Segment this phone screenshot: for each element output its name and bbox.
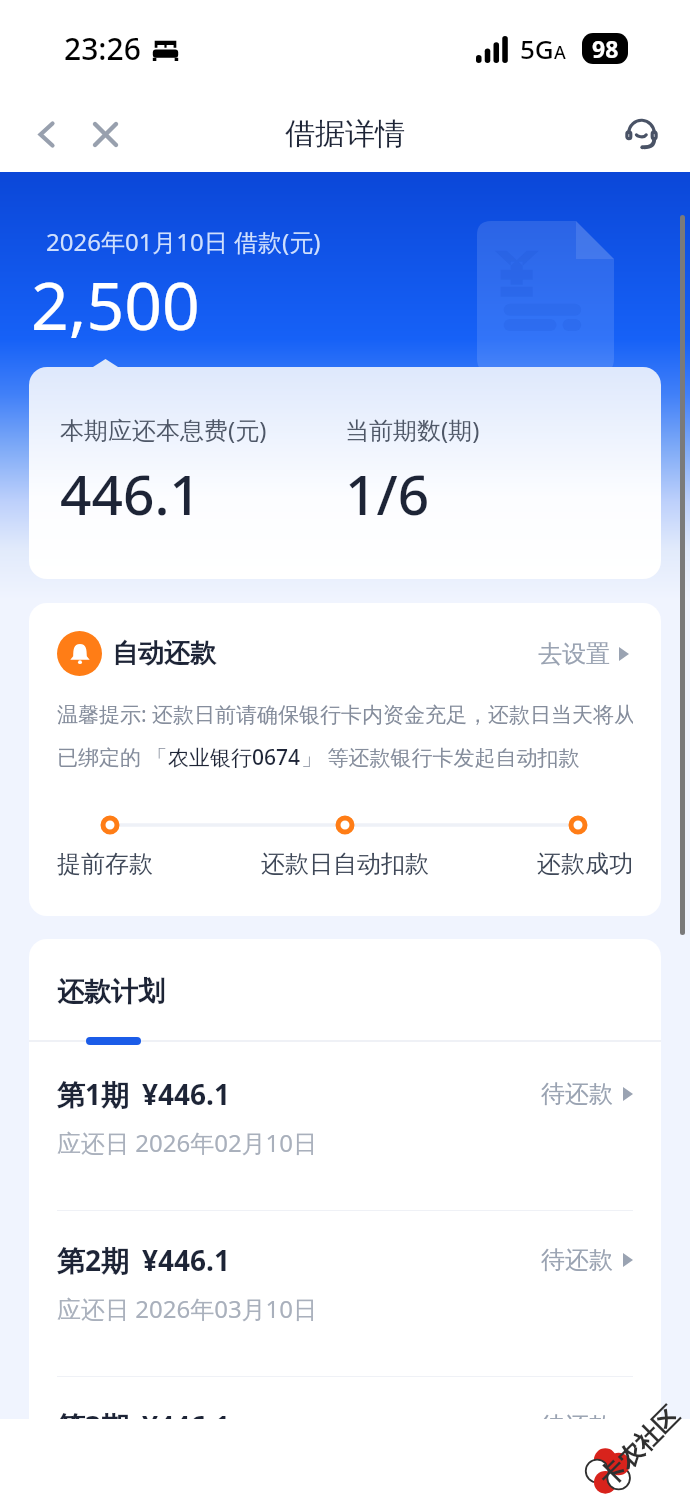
staticText: 提前存款: [57, 849, 153, 879]
staticText: ¥446.1: [142, 1075, 230, 1113]
staticText: 还款计划: [57, 975, 165, 1009]
staticText: ¥446.1: [142, 1241, 230, 1279]
staticText: 应还日 2026年03月10日: [57, 1292, 318, 1325]
staticText: 第2期: [57, 1241, 130, 1279]
staticText: 5G: [520, 31, 554, 66]
staticText: 应还日 2026年02月10日: [57, 1126, 318, 1159]
staticText: 借据详情: [285, 115, 405, 153]
staticText: 第3期: [57, 1407, 130, 1445]
staticText: 卡农社区: [593, 1400, 685, 1493]
button[interactable]: 第3期: [29, 1377, 661, 1500]
button[interactable]: Back: [24, 109, 74, 159]
staticText: 23:26: [64, 28, 141, 69]
staticText: 温馨提示: 还款日前请确保银行卡内资金充足，还款日当天将从: [57, 700, 633, 729]
staticText: ¥446.1: [142, 1407, 230, 1445]
button[interactable]: 第2期: [29, 1211, 661, 1376]
staticText: 本期应还本息费(元): [60, 413, 267, 446]
button[interactable]: Close: [80, 109, 130, 159]
staticText: 待还款: [541, 1079, 613, 1109]
staticText: 自动还款: [112, 637, 216, 670]
staticText: 已绑定的 「: [57, 743, 168, 772]
staticText: 」 等还款银行卡发起自动扣款: [301, 743, 580, 772]
staticText: A: [554, 40, 566, 65]
staticText: 还款成功: [537, 849, 633, 879]
staticText: 农业银行0674: [168, 743, 301, 772]
staticText: 98: [592, 33, 619, 64]
staticText: 446.1: [60, 456, 201, 531]
staticText: 待还款: [541, 1411, 613, 1441]
button[interactable]: 第1期: [29, 1045, 661, 1210]
staticText: 当前期数(期): [345, 413, 480, 446]
staticText: 去设置: [538, 639, 610, 669]
staticText: 待还款: [541, 1245, 613, 1275]
staticText: 还款日自动扣款: [261, 849, 429, 879]
staticText: 2,500: [31, 259, 200, 349]
staticText: 第1期: [57, 1075, 130, 1113]
staticText: 2026年01月10日 借款(元): [46, 225, 321, 258]
staticText: 1/6: [345, 456, 430, 531]
button[interactable]: Customer service: [616, 109, 666, 159]
button[interactable]: 去设置: [534, 635, 633, 673]
